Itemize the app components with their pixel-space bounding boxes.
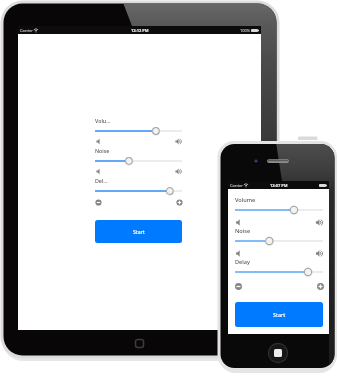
button[interactable]: Increase: [315, 281, 326, 292]
staticText: Delay: [235, 258, 250, 266]
button[interactable]: Decrease: [233, 281, 244, 292]
button[interactable]: Mute: [93, 166, 104, 177]
staticText: Del...: [95, 177, 108, 184]
staticText: Carrier: [20, 28, 34, 33]
staticText: 12:07 PM: [270, 183, 288, 188]
button[interactable]: [231, 267, 327, 277]
staticText: Carrier: [230, 183, 244, 188]
button[interactable]: Start: [235, 302, 323, 327]
staticText: 100%: [240, 28, 251, 33]
staticText: Volu...: [95, 117, 111, 124]
button[interactable]: [91, 156, 186, 166]
staticText: Start: [273, 311, 286, 318]
button[interactable]: [91, 186, 186, 196]
staticText: Volume: [235, 196, 256, 204]
button[interactable]: [91, 126, 186, 136]
button[interactable]: Start: [95, 220, 182, 243]
button[interactable]: Mute: [233, 217, 244, 228]
button[interactable]: [231, 205, 327, 215]
button[interactable]: Mute: [233, 248, 244, 259]
staticText: Noise: [235, 227, 251, 235]
button[interactable]: Volume up: [174, 136, 185, 147]
button[interactable]: Mute: [93, 136, 104, 147]
button[interactable]: Volume up: [174, 166, 185, 177]
button[interactable]: Increase: [174, 197, 185, 208]
button[interactable]: Volume up: [315, 217, 326, 228]
button[interactable]: Decrease: [93, 197, 104, 208]
staticText: Start: [133, 228, 145, 235]
staticText: 12:12 PM: [131, 28, 149, 33]
button[interactable]: Volume up: [315, 248, 326, 259]
button[interactable]: [231, 236, 327, 246]
staticText: Noise: [95, 147, 110, 154]
